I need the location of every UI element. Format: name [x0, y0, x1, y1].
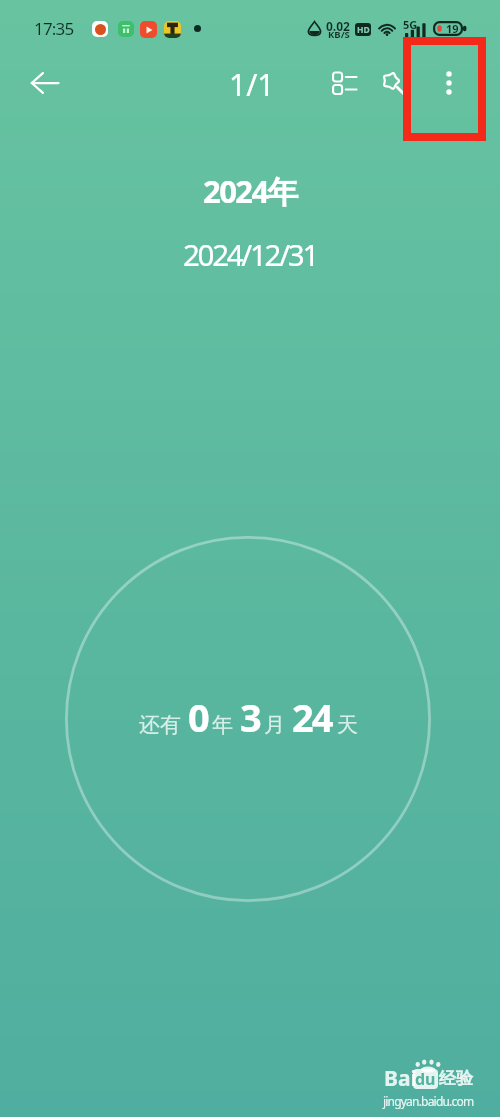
staticText: HD	[357, 24, 370, 36]
staticText: Bai	[384, 1064, 417, 1093]
staticText: jingyan.baidu.com	[383, 1093, 474, 1109]
staticText: 0	[188, 691, 208, 743]
staticText: 24	[292, 691, 332, 743]
staticText: 5G	[403, 17, 418, 32]
staticText: KB/S	[328, 28, 350, 41]
staticText: 经验	[439, 1068, 473, 1089]
button[interactable]: Back	[21, 59, 69, 107]
staticText: 0.02	[326, 18, 350, 34]
button[interactable]: Magic wand	[370, 60, 416, 106]
staticText: du	[415, 1069, 436, 1088]
staticText: 天	[337, 712, 358, 738]
staticText: 月	[264, 712, 285, 738]
staticText: 2024/12/31	[0, 234, 500, 274]
staticText: 1/1	[229, 64, 275, 105]
staticText: 19	[446, 21, 459, 36]
button[interactable]: More options	[426, 60, 472, 106]
staticText: 17:35	[34, 17, 74, 40]
staticText: 2024年	[0, 170, 500, 212]
staticText: 还有	[139, 712, 181, 738]
button[interactable]: 1/1	[216, 61, 288, 105]
button[interactable]: List view	[321, 60, 367, 106]
staticText: 3	[240, 691, 260, 743]
staticText: 年	[212, 712, 233, 738]
